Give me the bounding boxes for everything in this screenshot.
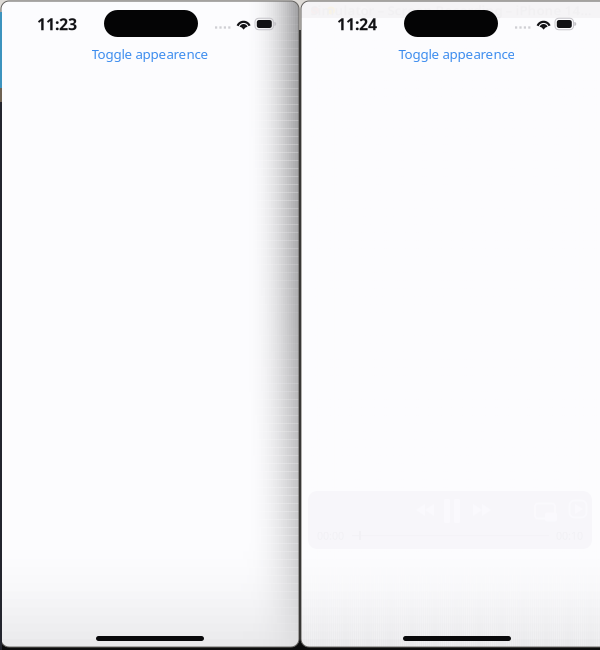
button[interactable]: Toggle appearence <box>301 45 600 63</box>
staticText: Simulator – Screen Recording – iPhone 14… <box>310 1 591 19</box>
staticText: Toggle appearence <box>91 45 208 63</box>
staticText: 11:23 <box>37 13 77 35</box>
staticText: 11:24 <box>337 13 377 35</box>
button[interactable]: Toggle appearence <box>1 45 299 63</box>
staticText: Toggle appearence <box>398 45 515 63</box>
